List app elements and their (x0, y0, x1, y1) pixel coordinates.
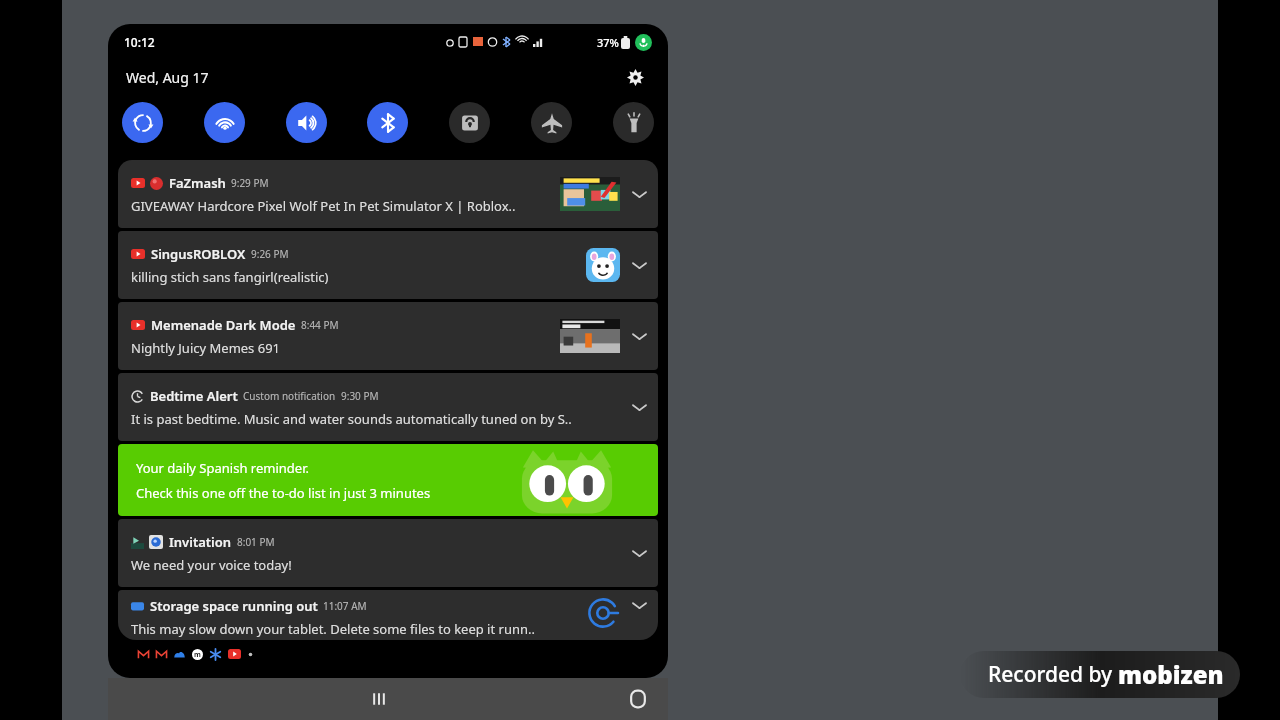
staticText: 10:12 (124, 34, 155, 50)
button[interactable]: Flashlight (613, 102, 654, 143)
staticText: killing stich sans fangirl(realistic) (131, 268, 329, 286)
staticText: It is past bedtime. Music and water soun… (131, 410, 572, 428)
button[interactable]: Expand (628, 325, 650, 347)
button[interactable]: Home (616, 678, 660, 720)
button[interactable]: Bedtime Alert (118, 373, 658, 441)
staticText: 9:26 PM (251, 247, 289, 261)
staticText: Custom notification (243, 389, 336, 403)
staticText: This may slow down your tablet. Delete s… (131, 620, 535, 638)
button[interactable]: Bluetooth (367, 102, 408, 143)
staticText: Recorded by (988, 660, 1118, 689)
staticText: 9:30 PM (341, 389, 379, 403)
staticText: Check this one off the to-do list in jus… (136, 484, 431, 502)
staticText: Your daily Spanish reminder. (136, 459, 309, 477)
button[interactable]: Recents (357, 678, 401, 720)
button[interactable]: Invitation (118, 519, 658, 587)
button[interactable]: Auto rotate (122, 102, 163, 143)
button[interactable]: Wi-Fi (204, 102, 245, 143)
button[interactable]: FaZmash (118, 160, 658, 228)
button[interactable]: Your daily Spanish reminder. (118, 444, 658, 516)
button[interactable]: Screen lock (449, 102, 490, 143)
staticText: Storage space running out (150, 597, 318, 615)
staticText: Wed, Aug 17 (126, 68, 209, 87)
button[interactable]: Memenade Dark Mode (118, 302, 658, 370)
staticText: 37% (597, 35, 619, 50)
staticText: 8:01 PM (237, 535, 275, 549)
staticText: Nightly Juicy Memes 691 (131, 339, 281, 357)
staticText: We need your voice today! (131, 556, 292, 574)
button[interactable]: Expand (628, 542, 650, 564)
button[interactable]: Expand (628, 594, 650, 616)
staticText: mobizen (1118, 658, 1224, 691)
button[interactable]: Sound (286, 102, 327, 143)
button[interactable]: Storage space running out (118, 590, 658, 640)
staticText: Invitation (169, 533, 232, 551)
button[interactable]: Airplane mode (531, 102, 572, 143)
staticText: GIVEAWAY Hardcore Pixel Wolf Pet In Pet … (131, 197, 516, 215)
staticText: Bedtime Alert (150, 387, 238, 405)
staticText: FaZmash (169, 174, 226, 192)
button[interactable]: Expand (628, 396, 650, 418)
button[interactable]: Settings (622, 64, 648, 90)
staticText: Memenade Dark Mode (151, 316, 296, 334)
staticText: 8:44 PM (301, 318, 339, 332)
button[interactable]: Expand (628, 183, 650, 205)
staticText: 9:29 PM (231, 176, 269, 190)
staticText: 11:07 AM (323, 599, 367, 613)
staticText: SingusROBLOX (151, 245, 246, 263)
staticText: m (194, 650, 201, 660)
button[interactable]: Expand (628, 254, 650, 276)
button[interactable]: SingusROBLOX (118, 231, 658, 299)
